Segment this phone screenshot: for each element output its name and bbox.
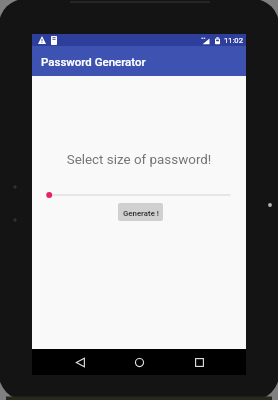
staticText: Select size of password!	[32, 152, 246, 168]
staticText: Password Generator	[41, 55, 146, 68]
button[interactable]: Recent apps	[190, 353, 208, 371]
staticText: 11:02	[224, 36, 243, 45]
button[interactable]: Password length slider	[32, 189, 246, 201]
button[interactable]: Password Generator	[32, 46, 246, 76]
staticText: Generate !	[123, 209, 159, 218]
button[interactable]: Back	[71, 353, 89, 371]
button[interactable]: Home	[130, 353, 148, 371]
button[interactable]: Generate !	[118, 203, 163, 221]
